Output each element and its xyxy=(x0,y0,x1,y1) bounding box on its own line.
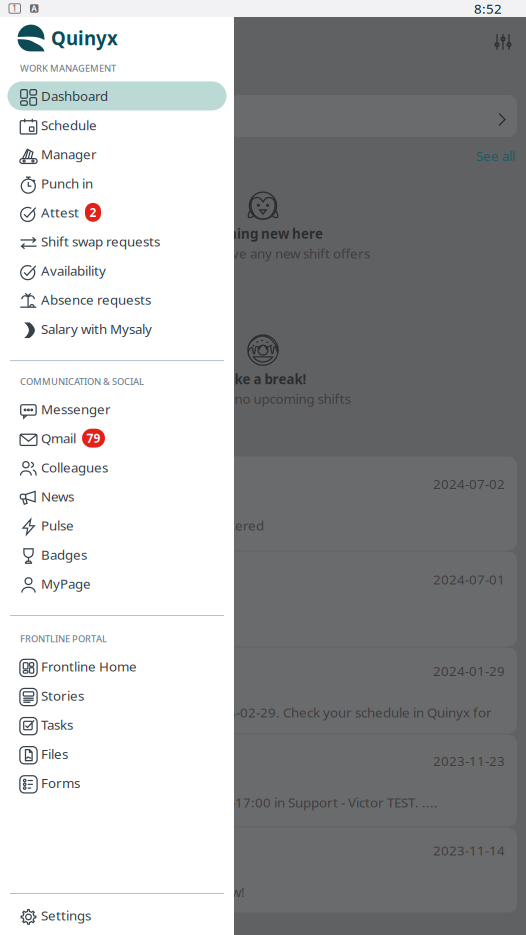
staticText: You have a shift 2023-11-27 08:00-17:00 … xyxy=(21,793,438,811)
button[interactable]: Settings xyxy=(7,901,226,930)
button[interactable]: Punch in xyxy=(7,169,226,198)
staticText: A new article is out, check it out now! xyxy=(21,883,245,901)
staticText: Salary with Mysaly xyxy=(41,320,152,338)
button[interactable]: Badges xyxy=(7,540,226,569)
button[interactable]: News xyxy=(7,482,226,511)
staticText: You have no upcoming shifts xyxy=(175,390,350,407)
staticText: 2023-11-14 xyxy=(433,841,505,859)
staticText: Schedule is published up until 2024-02-2… xyxy=(21,703,492,721)
staticText: Manager xyxy=(41,145,97,163)
staticText: Stories xyxy=(41,687,84,704)
button[interactable]: Shift swap requests xyxy=(7,227,226,256)
staticText: COMMUNICATION & SOCIAL xyxy=(20,375,144,387)
staticText: Punch in xyxy=(41,174,93,192)
staticText: 2 xyxy=(89,204,96,220)
staticText: Settings xyxy=(41,907,91,924)
staticText: Frontline Home xyxy=(41,658,137,675)
staticText: Availability xyxy=(41,262,106,279)
staticText: You don't have any new shift offers xyxy=(156,244,370,262)
staticText: See all xyxy=(476,147,515,165)
staticText: Attest xyxy=(41,203,79,221)
staticText: 2024-01-29 xyxy=(433,662,505,680)
staticText: 2024-07-01 xyxy=(433,570,505,588)
button[interactable]: Schedule xyxy=(7,110,226,140)
staticText: Support - Victor TEST xyxy=(21,683,156,700)
button[interactable]: Frontline Home xyxy=(7,652,226,681)
staticText: Tasks xyxy=(41,716,73,733)
staticText: FRONTLINE PORTAL xyxy=(20,632,107,645)
staticText: 8:52 xyxy=(474,0,502,17)
staticText: 79 xyxy=(86,430,100,446)
button[interactable]: Manager xyxy=(7,140,226,169)
button[interactable]: Absence requests xyxy=(7,285,226,314)
staticText: WORK MANAGEMENT xyxy=(20,62,116,74)
button[interactable]: Qmail xyxy=(7,424,226,453)
staticText: 2023-11-23 xyxy=(433,752,505,770)
staticText: Punch has been registered xyxy=(21,612,185,630)
staticText: Punch registered xyxy=(21,591,135,609)
button[interactable]: Dashboard xyxy=(7,81,226,110)
staticText: Messenger xyxy=(41,400,111,418)
button[interactable]: Tasks xyxy=(7,710,226,739)
staticText: Schedule xyxy=(41,116,97,134)
staticText: Punch registered xyxy=(21,496,135,513)
button[interactable]: Colleagues xyxy=(7,453,226,482)
staticText: Forms xyxy=(41,774,80,792)
staticText: Badges xyxy=(41,546,87,563)
staticText: 2024-07-02 xyxy=(433,475,505,493)
button[interactable]: Messenger xyxy=(7,394,226,424)
button[interactable]: Files xyxy=(7,739,226,768)
button[interactable]: Stories xyxy=(7,681,226,710)
staticText: Absence requests xyxy=(41,291,151,308)
staticText: Colleagues xyxy=(41,458,108,476)
staticText: 1 xyxy=(12,3,17,14)
button[interactable]: Attest xyxy=(7,198,226,227)
button[interactable]: Pulse xyxy=(7,511,226,540)
staticText: Pulse xyxy=(41,517,74,534)
staticText: News xyxy=(41,487,74,505)
staticText: MyPage xyxy=(41,575,91,592)
button[interactable]: Availability xyxy=(7,256,226,285)
staticText: A xyxy=(31,3,37,14)
staticText: Take a break! xyxy=(219,370,306,388)
staticText: Files xyxy=(41,745,68,763)
staticText: Dashboard xyxy=(41,87,108,105)
staticText: Punch 08:00-17:00 has been registered xyxy=(21,516,264,534)
staticText: Quinyx xyxy=(51,26,118,50)
button[interactable]: Forms xyxy=(7,768,226,797)
staticText: New shift xyxy=(21,773,85,790)
staticText: Qmail xyxy=(41,429,76,447)
staticText: Nothing new here xyxy=(203,225,323,242)
button[interactable]: Salary with Mysaly xyxy=(7,314,226,343)
button[interactable]: MyPage xyxy=(7,569,226,598)
staticText: Shift swap requests xyxy=(41,233,160,250)
